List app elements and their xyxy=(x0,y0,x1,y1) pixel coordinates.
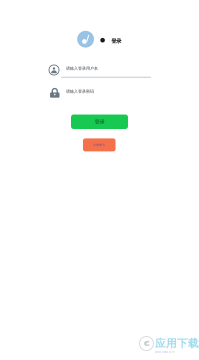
staticText: 请输入登录密码 xyxy=(66,89,94,94)
staticText: 登录 xyxy=(94,118,104,125)
button[interactable]: 注册账号 xyxy=(83,138,115,151)
staticText: 请输入登录用户名 xyxy=(66,66,98,71)
staticText: www.xiazai.com xyxy=(155,350,174,354)
button[interactable]: 登录 xyxy=(71,114,128,129)
staticText: 应用下载 xyxy=(155,337,199,350)
staticText: 注册账号 xyxy=(93,143,105,147)
staticText: 登录 xyxy=(111,38,121,44)
